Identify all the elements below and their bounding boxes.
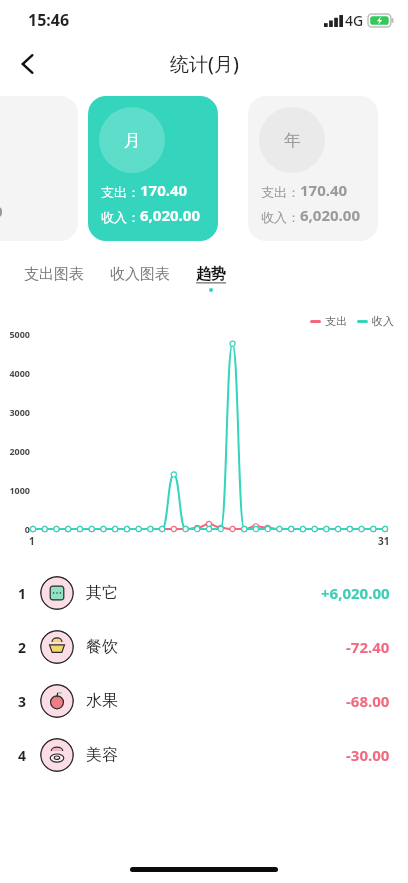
staticText: 4000 [4,367,30,379]
staticText: 1000 [4,484,30,496]
button[interactable]: 年 [248,96,378,241]
staticText: 支出 [325,314,347,328]
staticText: 收入： [101,209,140,225]
staticText: -30.00 [346,745,390,765]
button[interactable]: Back [6,42,50,86]
staticText: 15:46 [28,9,70,31]
staticText: 支出图表 [24,265,84,284]
staticText: 趋势 [196,265,226,284]
staticText: 4G [345,11,364,30]
staticText: 2 [18,638,40,657]
staticText: 170.40 [140,180,188,200]
button[interactable]: 1 [0,566,408,620]
staticText: 收入 [372,314,394,328]
staticText: 3 [18,692,40,711]
button[interactable]: 月 [88,96,218,241]
button[interactable]: 3 [0,674,408,728]
staticText: 6,020.00 [300,205,360,225]
staticText: 水果 [86,691,118,711]
staticText: 月 [124,130,141,151]
staticText: 支出： [261,184,300,200]
staticText: 收入： [261,209,300,225]
staticText: 支出： [101,184,140,200]
staticText: 其它 [86,583,118,603]
staticText: 170.40 [300,180,348,200]
staticText: 4 [18,746,40,765]
button[interactable]: 4 [0,728,408,782]
button[interactable]: 趋势 [194,263,228,294]
staticText: -68.00 [346,691,390,711]
button[interactable]: 60 [0,96,78,241]
staticText: 美容 [86,745,118,765]
staticText: 0 [4,523,30,535]
staticText: 统计(月) [170,51,239,77]
staticText: 年 [284,130,301,151]
staticText: 2000 [4,445,30,457]
staticText: 3000 [4,406,30,418]
staticText: 6,020.00 [140,205,200,225]
staticText: 1 [29,534,35,548]
button[interactable]: 2 [0,620,408,674]
staticText: 31 [378,534,390,548]
staticText: -72.40 [346,637,390,657]
staticText: 1 [18,584,40,603]
button[interactable]: 支出图表 [22,263,86,286]
staticText: +6,020.00 [321,583,390,603]
staticText: 00.00 [0,201,3,221]
staticText: 收入图表 [110,265,170,284]
button[interactable]: 收入图表 [108,263,172,286]
staticText: 餐饮 [86,637,118,657]
staticText: 5000 [4,328,30,340]
